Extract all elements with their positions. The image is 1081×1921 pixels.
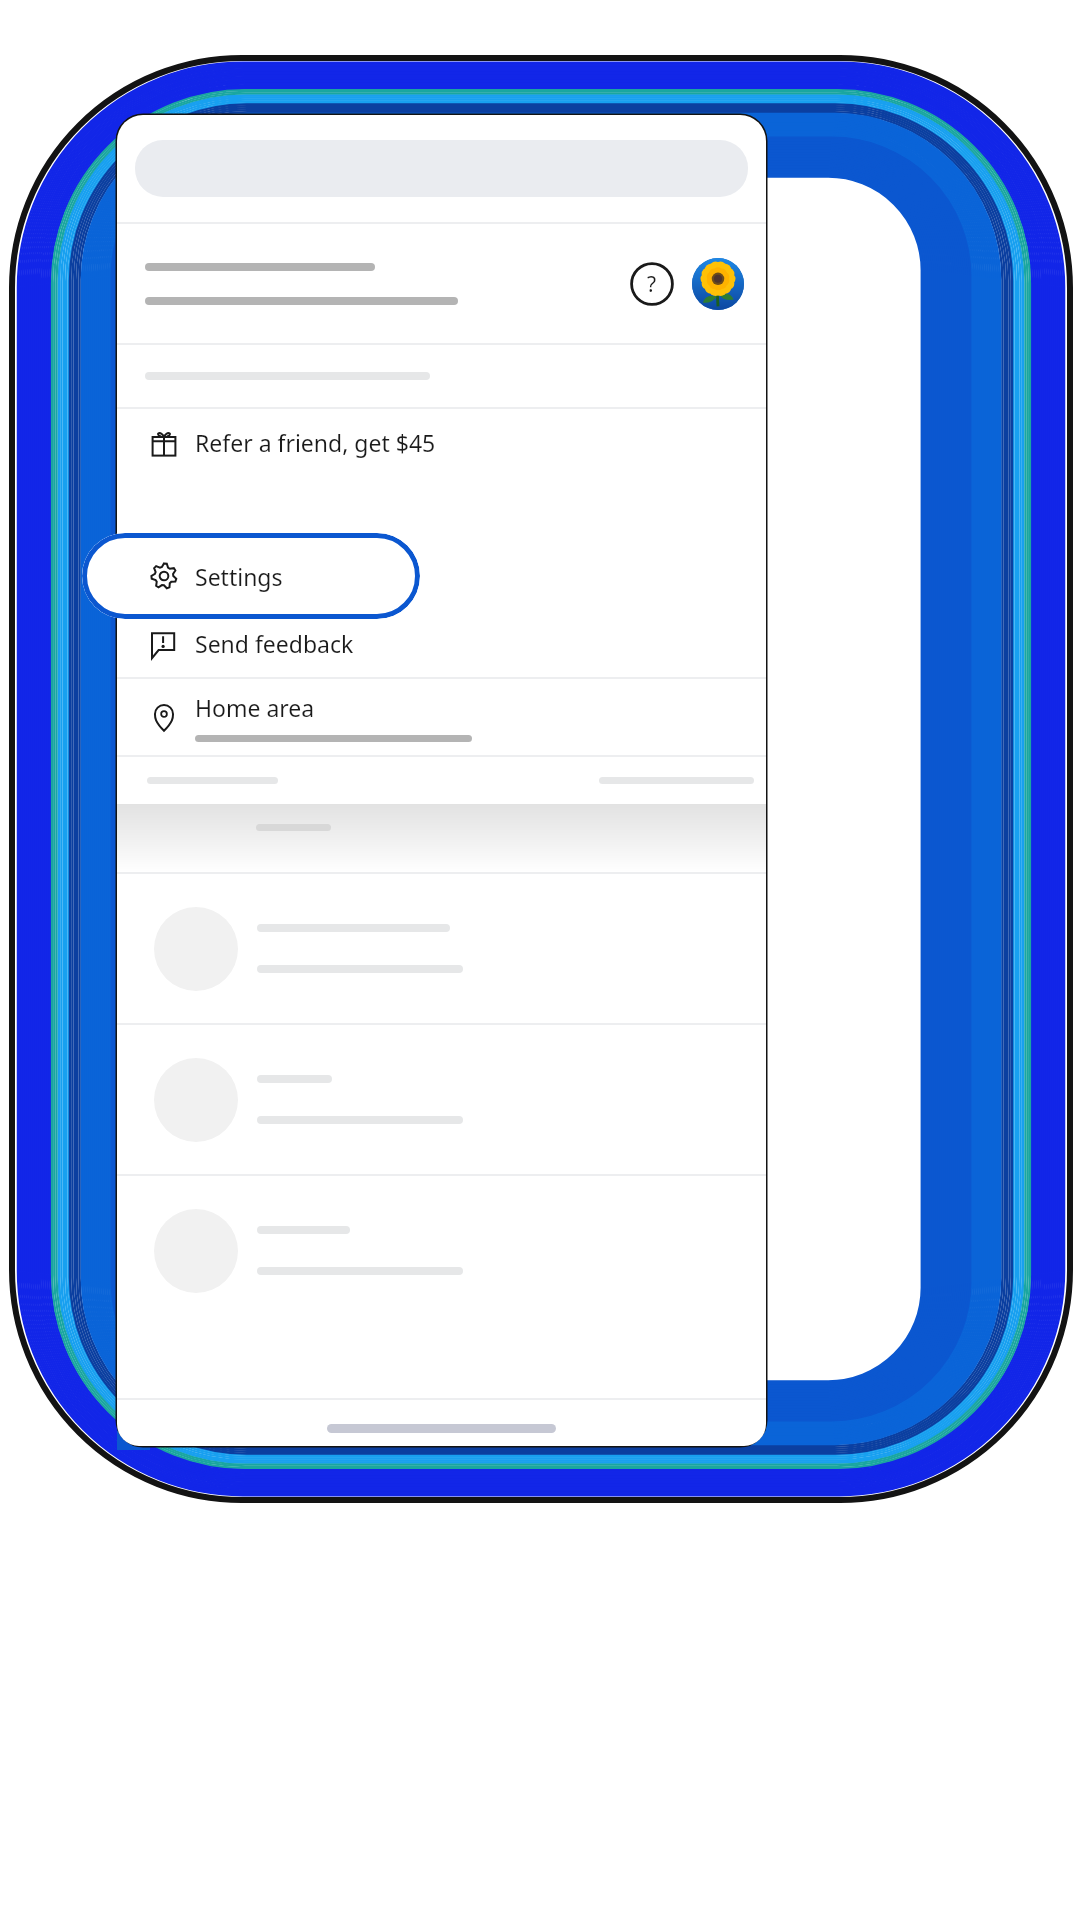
button[interactable]: Settings: [82, 533, 420, 619]
staticText: Settings: [195, 561, 283, 592]
staticText: ?: [647, 270, 657, 299]
button[interactable]: Refer a friend, get $45: [117, 409, 766, 476]
button[interactable]: [117, 476, 766, 543]
staticText: Refer a friend, get $45: [195, 427, 436, 458]
button[interactable]: Home area: [117, 679, 766, 755]
button[interactable]: [117, 1025, 766, 1174]
staticText: Send feedback: [195, 628, 354, 659]
button[interactable]: Language: [117, 543, 766, 610]
button[interactable]: Help: [628, 260, 676, 308]
button[interactable]: Account: [692, 258, 744, 310]
button[interactable]: [117, 1176, 766, 1325]
staticText: Language: [195, 561, 303, 592]
staticText: Home area: [195, 692, 315, 723]
button[interactable]: Send feedback: [117, 610, 766, 677]
button[interactable]: [117, 874, 766, 1023]
